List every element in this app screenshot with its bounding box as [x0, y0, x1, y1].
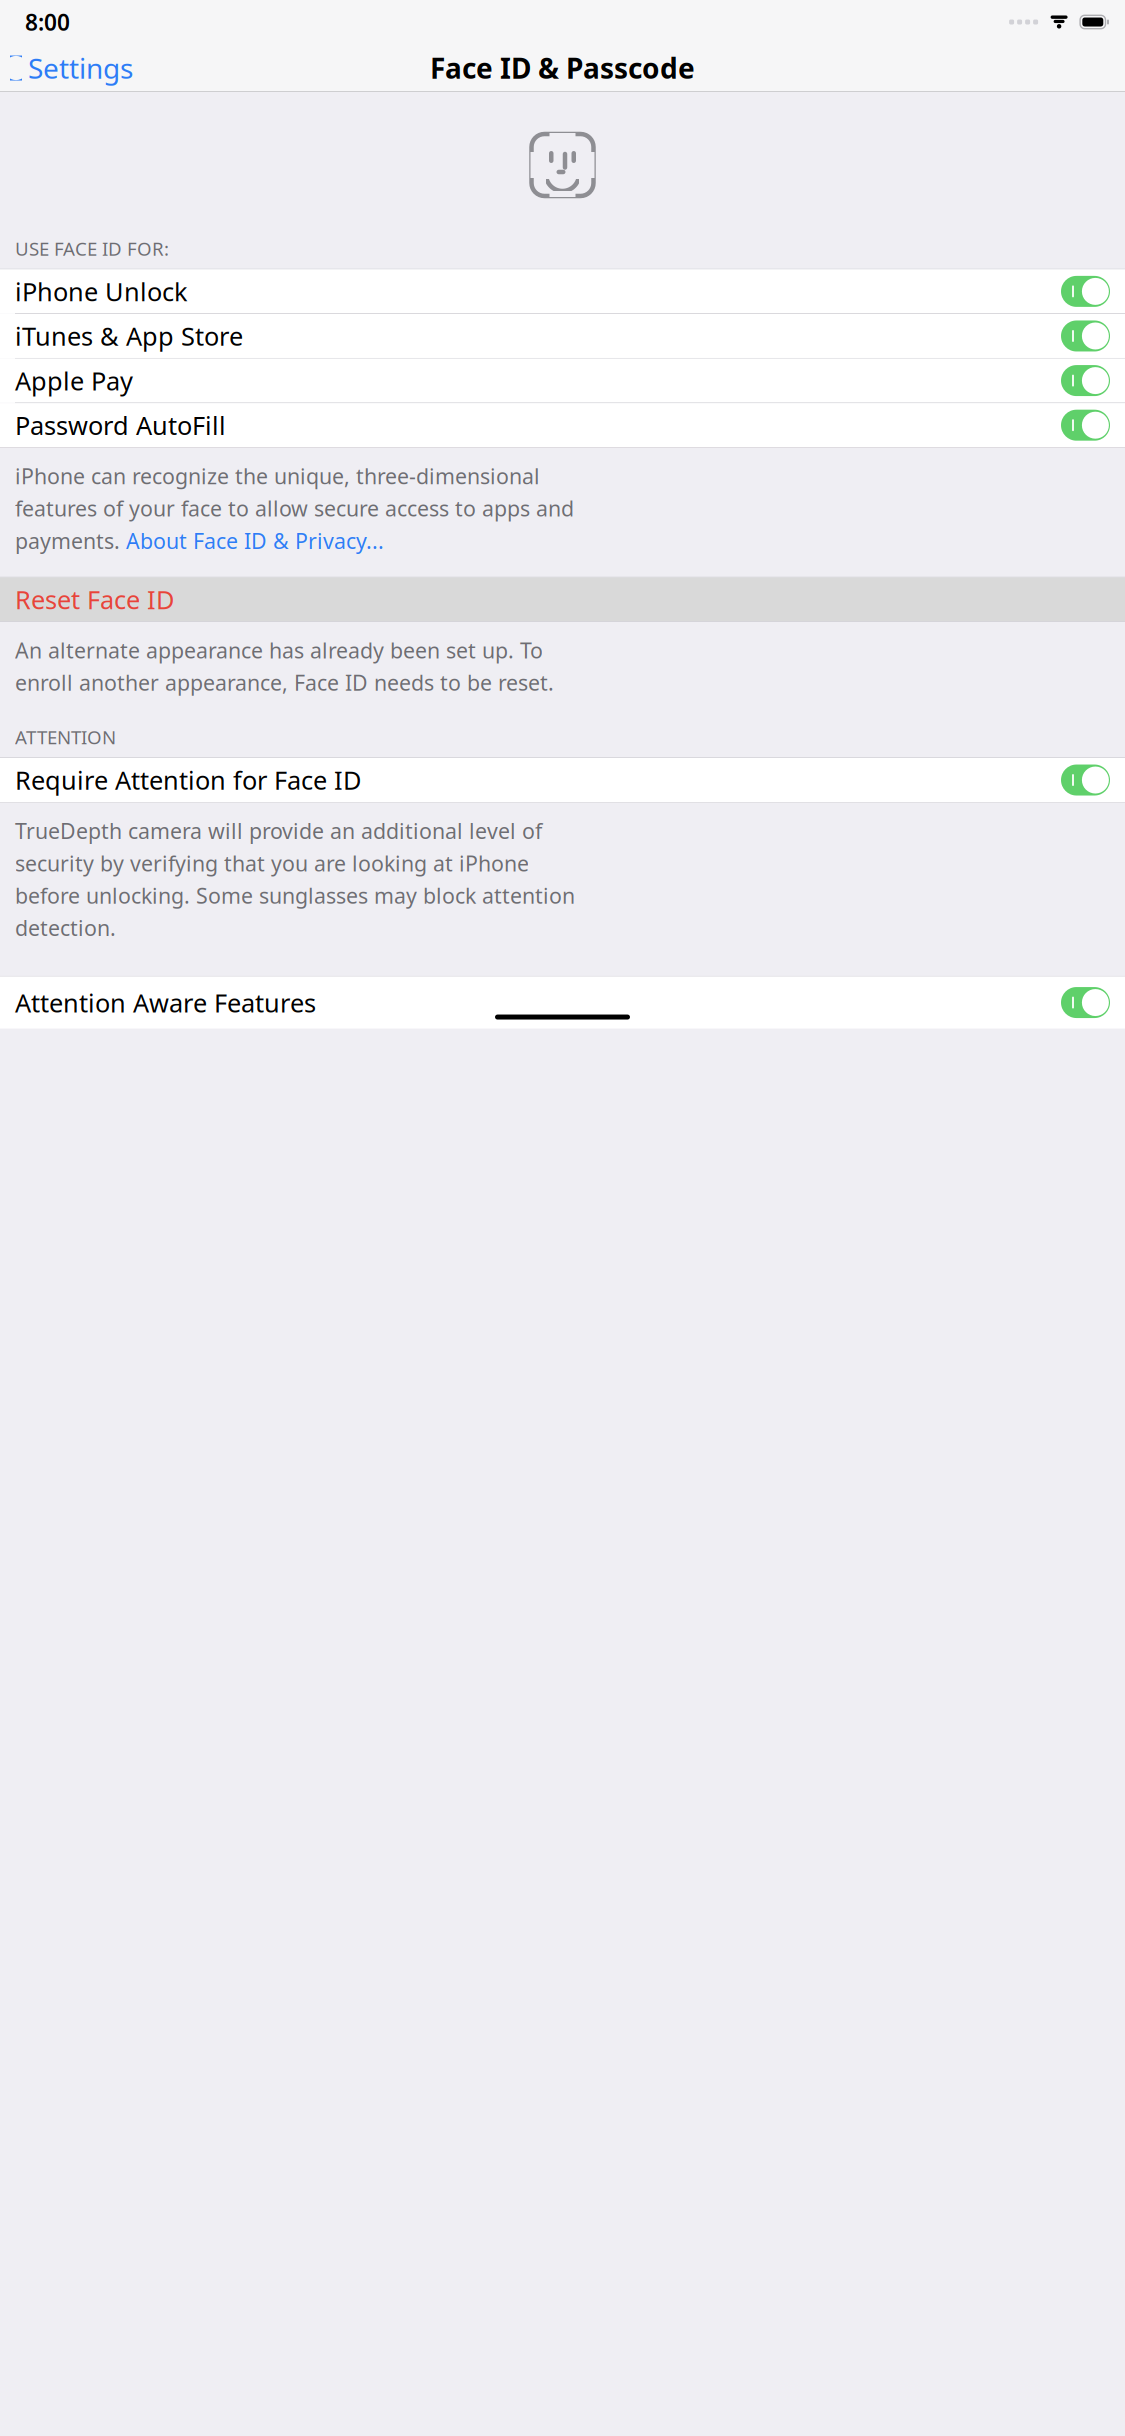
staticText: An alternate appearance has already been…	[15, 636, 543, 664]
staticText: 8:00	[25, 7, 70, 37]
staticText: TrueDepth camera will provide an additio…	[15, 817, 542, 845]
staticText: detection.	[15, 914, 116, 942]
staticText: Reset Face ID	[15, 583, 174, 616]
staticText: Attention Aware Features	[15, 986, 316, 1019]
staticText: payments.	[15, 526, 126, 555]
button[interactable]: Settings	[0, 41, 145, 95]
staticText: iPhone Unlock	[15, 275, 188, 308]
staticText: Settings	[28, 49, 133, 87]
button[interactable]: Reset Face ID	[0, 577, 1125, 621]
staticText: iPhone can recognize the unique, three-d…	[15, 462, 540, 490]
staticText: ATTENTION	[15, 725, 116, 749]
button[interactable]: About Face ID & Privacy...	[126, 526, 384, 555]
staticText: Face ID & Passcode	[430, 49, 695, 87]
button[interactable]: iTunes & App Store	[0, 314, 1125, 358]
staticText: Password AutoFill	[15, 408, 226, 442]
button[interactable]: iPhone Unlock	[0, 269, 1125, 313]
staticText: Require Attention for Face ID	[15, 763, 361, 797]
staticText: enroll another appearance, Face ID needs…	[15, 668, 554, 697]
staticText: features of your face to allow secure ac…	[15, 494, 574, 522]
button[interactable]: Password AutoFill	[0, 403, 1125, 447]
staticText: About Face ID & Privacy...	[126, 526, 384, 555]
button[interactable]: Require Attention for Face ID	[0, 758, 1125, 802]
button[interactable]: Attention Aware Features	[0, 977, 1125, 1029]
button[interactable]: Apple Pay	[0, 359, 1125, 403]
staticText: before unlocking. Some sunglasses may bl…	[15, 881, 575, 910]
staticText: USE FACE ID FOR:	[15, 236, 169, 261]
staticText: iTunes & App Store	[15, 319, 243, 353]
staticText: security by verifying that you are looki…	[15, 849, 529, 877]
staticText: Apple Pay	[15, 364, 133, 397]
